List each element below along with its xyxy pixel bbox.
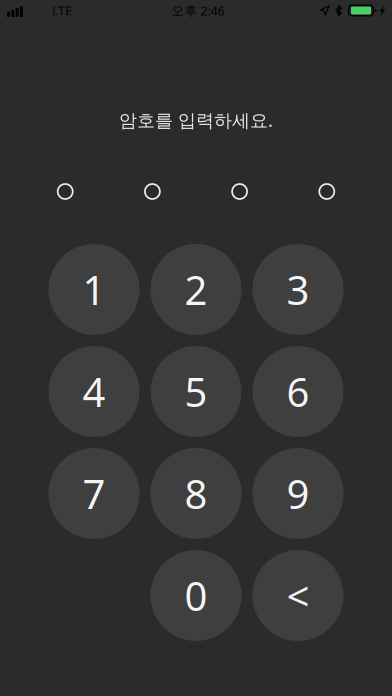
staticText: 7 xyxy=(82,467,105,520)
button[interactable]: 3 xyxy=(252,244,343,335)
staticText: 9 xyxy=(286,467,309,520)
button[interactable]: 6 xyxy=(252,346,343,437)
staticText: 8 xyxy=(184,467,207,520)
button[interactable]: 7 xyxy=(48,448,139,539)
staticText: < xyxy=(286,569,309,622)
button[interactable]: 0 xyxy=(150,550,241,641)
staticText: 5 xyxy=(184,365,207,418)
button[interactable]: 2 xyxy=(150,244,241,335)
staticText: 3 xyxy=(286,263,309,316)
button[interactable]: 4 xyxy=(48,346,139,437)
button[interactable]: 8 xyxy=(150,448,241,539)
staticText: 오후 2:46 xyxy=(171,2,224,19)
button[interactable]: Delete xyxy=(252,550,343,641)
staticText: 4 xyxy=(82,365,105,418)
staticText: 암호를 입력하세요. xyxy=(119,108,273,132)
button[interactable]: 5 xyxy=(150,346,241,437)
staticText: 2 xyxy=(184,263,207,316)
button[interactable]: 9 xyxy=(252,448,343,539)
staticText: 1 xyxy=(82,263,105,316)
staticText: 6 xyxy=(286,365,309,418)
staticText: LTE xyxy=(52,2,72,19)
staticText: 0 xyxy=(184,569,207,622)
button[interactable]: 1 xyxy=(48,244,139,335)
